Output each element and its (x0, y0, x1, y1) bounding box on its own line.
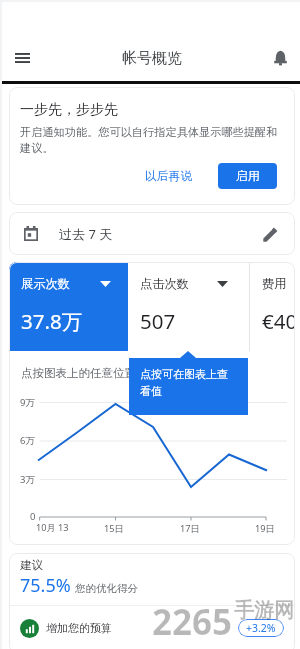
staticText: €40 (262, 307, 295, 335)
button[interactable]: 费用 (250, 262, 295, 351)
staticText: 9万 (20, 396, 35, 409)
button[interactable]: +3.2% (238, 619, 284, 637)
staticText: 启用 (236, 169, 260, 184)
staticText: 6万 (20, 434, 35, 447)
staticText: 507 (140, 307, 176, 335)
button[interactable]: 展示次数 (9, 262, 128, 351)
staticText: 以后再说 (145, 169, 193, 184)
staticText: 19日 (255, 522, 275, 535)
staticText: 17日 (180, 522, 200, 535)
button[interactable]: 过去 7 天 (9, 212, 295, 255)
button[interactable]: 启用 (218, 163, 277, 189)
button[interactable]: Notifications (260, 36, 300, 80)
staticText: 增加您的预算 (46, 621, 112, 635)
staticText: 15日 (104, 522, 124, 535)
staticText: 75.5% (20, 573, 71, 598)
staticText: 过去 7 天 (59, 225, 113, 243)
staticText: 一步先，步步先 (20, 101, 118, 119)
staticText: 展示次数 (21, 276, 70, 291)
staticText: 建议 (20, 558, 43, 572)
staticText: 开启通知功能。您可以自行指定具体显示哪些提醒和 建议。 (20, 125, 284, 155)
staticText: 您的优化得分 (75, 582, 138, 595)
staticText: 帐号概览 (122, 49, 182, 68)
staticText: 点击次数 (140, 276, 189, 291)
staticText: 10月 13 (36, 521, 69, 534)
button[interactable]: Menu (2, 36, 43, 80)
staticText: 手游网 (234, 598, 294, 623)
button[interactable]: 点击次数 (128, 262, 249, 351)
staticText: 0 (30, 510, 36, 523)
staticText: 点按图表上的任意位置 (21, 366, 136, 380)
staticText: 费用 (262, 276, 287, 291)
staticText: 点按可在图表上查 看值 (140, 367, 228, 399)
staticText: 3万 (20, 473, 35, 486)
staticText: 2265 (152, 598, 233, 646)
button[interactable]: 增加您的预算 (9, 606, 295, 649)
button[interactable]: Edit date range (253, 216, 289, 252)
staticText: +3.2% (246, 621, 276, 635)
button[interactable]: 以后再说 (138, 163, 200, 189)
staticText: 37.8万 (21, 307, 83, 335)
